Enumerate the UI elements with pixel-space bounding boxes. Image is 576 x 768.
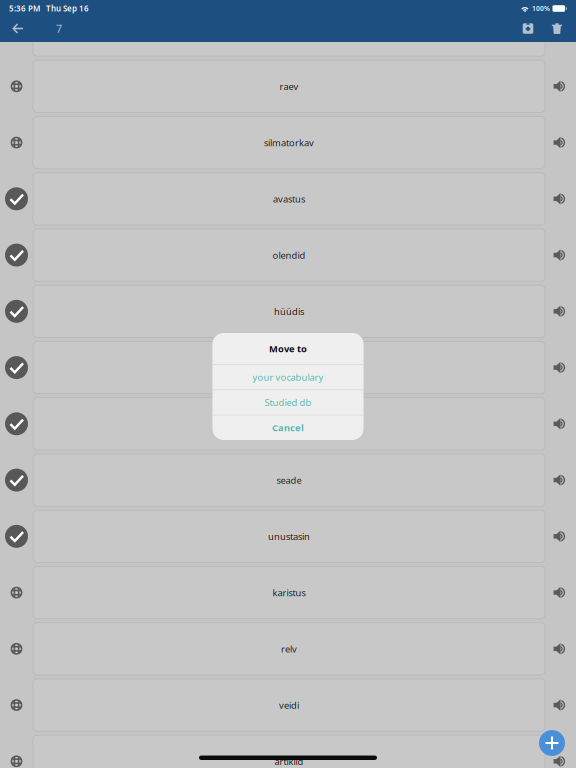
staticText: Cancel xyxy=(272,421,304,434)
staticText: unustasin xyxy=(268,530,310,542)
button[interactable]: Mark as studied xyxy=(0,341,33,394)
button[interactable]: veidi xyxy=(33,679,545,731)
button[interactable]: Play pronunciation xyxy=(545,679,576,731)
button[interactable]: hüüdis xyxy=(33,285,545,337)
staticText: veidi xyxy=(279,699,299,711)
button[interactable]: seade xyxy=(33,454,545,506)
button[interactable]: Mark as studied xyxy=(0,510,33,562)
button[interactable]: Back xyxy=(5,16,31,41)
button[interactable]: Play pronunciation xyxy=(545,173,576,225)
button[interactable]: avastus xyxy=(33,173,545,225)
staticText: 100% xyxy=(532,4,550,13)
button[interactable]: artiklid xyxy=(33,735,545,768)
button[interactable]: silmatorkav xyxy=(33,116,545,169)
button[interactable]: karistus xyxy=(33,566,545,619)
button[interactable]: Play pronunciation xyxy=(545,566,576,619)
button[interactable]: Play pronunciation xyxy=(545,735,576,768)
button[interactable]: Mark as studied xyxy=(0,454,33,506)
button[interactable] xyxy=(33,398,545,450)
staticText: your vocabulary xyxy=(252,371,323,383)
button[interactable]: Play pronunciation xyxy=(545,285,576,337)
button[interactable]: Translate xyxy=(0,116,33,169)
staticText: Thu Sep 16 xyxy=(46,3,89,14)
button[interactable]: Save xyxy=(514,17,542,40)
button[interactable]: Delete xyxy=(542,17,572,40)
button[interactable]: raev xyxy=(33,60,545,112)
staticText: Move to xyxy=(269,342,307,355)
button[interactable]: Add word xyxy=(539,730,565,756)
button[interactable]: Cancel xyxy=(212,415,363,440)
staticText: raev xyxy=(279,80,298,92)
button[interactable]: Play pronunciation xyxy=(545,60,576,112)
staticText: olendid xyxy=(272,249,305,261)
button[interactable]: olendid xyxy=(33,229,545,281)
button[interactable] xyxy=(33,341,545,394)
button[interactable]: Studied db xyxy=(212,390,363,415)
staticText: silmatorkav xyxy=(264,136,314,149)
button[interactable]: Play pronunciation xyxy=(545,116,576,169)
button[interactable]: Play pronunciation xyxy=(545,341,576,394)
button[interactable]: Translate xyxy=(0,4,33,56)
button[interactable]: relv xyxy=(33,623,545,675)
staticText: hüüdis xyxy=(274,305,304,317)
button[interactable]: Play pronunciation xyxy=(545,4,576,56)
button[interactable]: Play pronunciation xyxy=(545,623,576,675)
button[interactable]: Translate xyxy=(0,566,33,619)
button[interactable]: Mark as studied xyxy=(0,229,33,281)
button[interactable]: Translate xyxy=(0,679,33,731)
button[interactable]: Translate xyxy=(0,623,33,675)
staticText: avastus xyxy=(273,193,305,205)
button[interactable]: Mark as studied xyxy=(0,285,33,337)
staticText: seade xyxy=(276,474,301,486)
button[interactable]: Mark as studied xyxy=(0,398,33,450)
button[interactable]: Translate xyxy=(0,60,33,112)
button[interactable] xyxy=(33,4,545,56)
button[interactable]: Play pronunciation xyxy=(545,398,576,450)
button[interactable]: Translate xyxy=(0,735,33,768)
staticText: relv xyxy=(281,643,297,655)
button[interactable]: 7 xyxy=(46,17,72,40)
staticText: Studied db xyxy=(264,396,311,409)
staticText: artiklid xyxy=(274,755,303,767)
staticText: 7 xyxy=(56,21,62,36)
button[interactable]: Play pronunciation xyxy=(545,229,576,281)
button[interactable]: unustasin xyxy=(33,510,545,562)
button[interactable]: Play pronunciation xyxy=(545,510,576,562)
staticText: karistus xyxy=(272,586,305,599)
button[interactable]: Play pronunciation xyxy=(545,454,576,506)
button[interactable]: your vocabulary xyxy=(212,365,363,389)
staticText: 5:36 PM xyxy=(9,3,40,14)
button[interactable]: Mark as studied xyxy=(0,173,33,225)
